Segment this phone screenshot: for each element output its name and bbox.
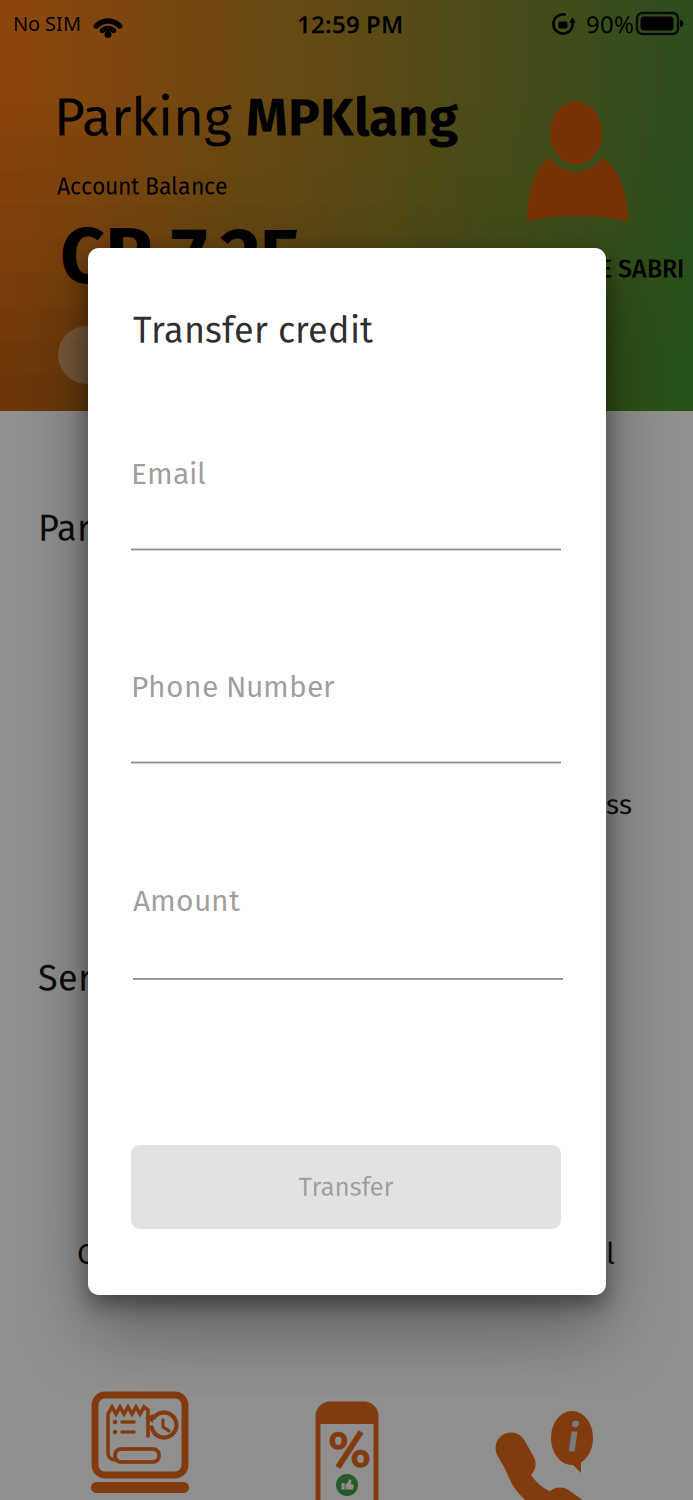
staticText: MPKlang [246,86,458,150]
staticText: E SABRI [599,254,684,284]
staticText: C [77,1236,94,1272]
staticText: Account Balance [57,173,228,201]
staticText: Amount [133,883,240,919]
staticText: ss [606,788,632,822]
staticText: CR 7.25 [60,210,302,304]
button[interactable]: Promotions [280,1400,414,1500]
staticText: 90% [586,8,634,40]
staticText: Transfer credit [133,309,373,352]
staticText: No SIM [13,10,81,37]
staticText: Parking [38,507,159,550]
button[interactable]: Phone Number [131,669,561,763]
staticText: l [606,1236,615,1272]
staticText: Email [131,456,206,492]
button[interactable]: Transfer [131,1145,561,1229]
staticText: i [568,1416,579,1462]
staticText: 12:59 PM [297,8,403,40]
staticText: Parking [54,86,246,150]
button[interactable]: Contact us [466,1390,636,1500]
button[interactable]: Profile [0,0,693,411]
button[interactable]: Amount [133,883,563,980]
staticText: % [328,1420,371,1480]
staticText: Phone Number [131,669,335,705]
button[interactable]: Parking history [0,1380,280,1500]
staticText: Services [38,957,173,1000]
button[interactable]: Email [131,456,561,550]
staticText: Transfer [298,1171,393,1203]
